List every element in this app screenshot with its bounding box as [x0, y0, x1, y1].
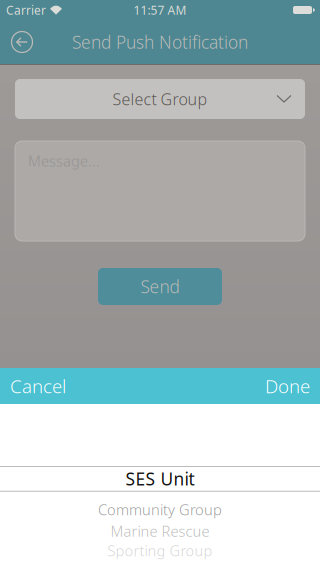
- staticText: Done: [265, 374, 310, 398]
- staticText: Marine Rescue: [110, 521, 209, 541]
- staticText: Community Group: [98, 500, 222, 519]
- staticText: Carrier: [6, 2, 46, 18]
- button[interactable]: Back: [5, 25, 39, 59]
- staticText: 11:57 AM: [133, 2, 186, 18]
- staticText: Select Group: [112, 88, 207, 110]
- staticText: Send Push Notification: [72, 30, 248, 53]
- staticText: Message...: [28, 151, 100, 170]
- staticText: Send: [140, 275, 179, 298]
- button[interactable]: Cancel: [0, 374, 66, 398]
- staticText: SES Unit: [125, 467, 194, 490]
- staticText: Sporting Group: [107, 541, 212, 560]
- button[interactable]: Select Group: [15, 79, 305, 119]
- staticText: Cancel: [10, 374, 66, 398]
- button[interactable]: Send: [98, 268, 222, 305]
- button[interactable]: Done: [265, 374, 320, 398]
